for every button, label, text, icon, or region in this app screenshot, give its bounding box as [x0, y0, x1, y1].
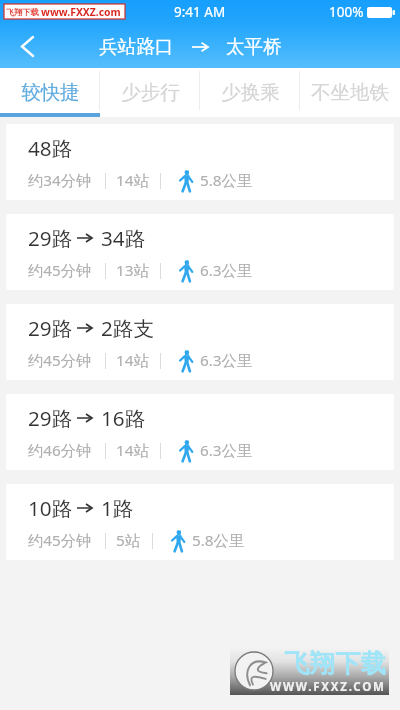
button[interactable]: 10路	[6, 484, 394, 560]
staticText: WWW.FXXZ.COM	[270, 679, 386, 695]
staticText: 100%	[329, 3, 364, 21]
staticText: 飞翔下载	[6, 7, 39, 17]
staticText: 14站	[116, 440, 149, 461]
button[interactable]: 29路	[6, 304, 394, 380]
staticText: 5站	[116, 530, 141, 551]
button[interactable]: 29路	[6, 214, 394, 290]
staticText: 14站	[116, 170, 149, 191]
staticText: 约45分钟	[28, 260, 92, 281]
staticText: 较快捷	[21, 80, 80, 105]
staticText: 10路	[28, 494, 73, 522]
staticText: 飞翔下载	[284, 648, 386, 679]
staticText: 16路	[101, 404, 146, 432]
staticText: 少步行	[121, 80, 180, 105]
staticText: 不坐地铁	[311, 80, 389, 105]
button[interactable]: Back	[5, 24, 49, 68]
button[interactable]: 48路	[6, 124, 394, 200]
staticText: 6.3公里	[200, 260, 253, 281]
staticText: 1路	[101, 494, 134, 522]
staticText: 5.8公里	[192, 530, 245, 551]
button[interactable]: 不坐地铁	[300, 68, 400, 117]
staticText: 29路	[28, 314, 73, 342]
staticText: 6.3公里	[200, 350, 253, 371]
button[interactable]: 少换乘	[200, 68, 300, 117]
staticText: 约45分钟	[28, 530, 92, 551]
button[interactable]: 29路	[6, 394, 394, 470]
staticText: 29路	[28, 404, 73, 432]
staticText: 13站	[116, 260, 149, 281]
staticText: 约46分钟	[28, 440, 92, 461]
staticText: 34路	[101, 224, 146, 252]
staticText: 9:41 AM	[174, 3, 226, 21]
button[interactable]: 较快捷	[0, 68, 100, 117]
staticText: 太平桥	[226, 35, 282, 58]
staticText: 少换乘	[221, 80, 280, 105]
staticText: 2路支	[101, 314, 155, 342]
staticText: 6.3公里	[200, 440, 253, 461]
staticText: 约45分钟	[28, 350, 92, 371]
staticText: 约34分钟	[28, 170, 92, 191]
staticText: 48路	[28, 134, 73, 162]
staticText: 14站	[116, 350, 149, 371]
staticText: www.FXXZ.com	[41, 5, 121, 19]
staticText: 29路	[28, 224, 73, 252]
staticText: 兵站路口	[99, 35, 174, 58]
button[interactable]: 少步行	[100, 68, 200, 117]
staticText: 5.8公里	[200, 170, 253, 191]
